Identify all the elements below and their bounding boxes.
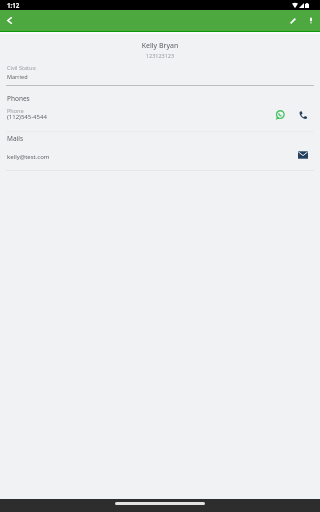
staticText: Mails	[7, 134, 24, 143]
staticText: 1:12	[7, 1, 20, 9]
button[interactable]: More options	[301, 10, 320, 31]
staticText: kelly@test.com	[7, 153, 50, 161]
button[interactable]: Send email	[293, 145, 312, 164]
staticText: 123123123	[0, 52, 320, 59]
staticText: Phone	[7, 107, 24, 114]
button[interactable]: WhatsApp	[271, 106, 289, 124]
staticText: Civil Status:	[7, 64, 37, 71]
button[interactable]: Call	[294, 106, 312, 124]
staticText: Kelly Bryan	[0, 41, 320, 51]
staticText: Phones	[7, 94, 30, 103]
staticText: (112)545-4544	[7, 113, 47, 121]
button[interactable]: Back	[0, 10, 19, 31]
button[interactable]: Edit	[280, 10, 301, 31]
staticText: Married	[7, 73, 28, 80]
